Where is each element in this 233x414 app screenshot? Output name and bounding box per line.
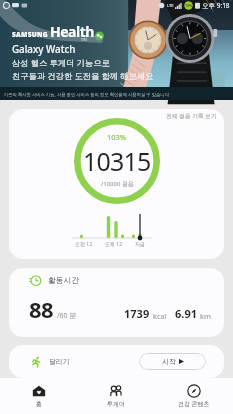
button[interactable]: 투게더: [77, 378, 155, 414]
staticText: 88: [29, 294, 54, 324]
staticText: kcal: [153, 311, 167, 321]
button[interactable]: 홈: [0, 378, 77, 414]
staticText: km: [200, 311, 212, 321]
staticText: LTE: [167, 3, 174, 8]
staticText: SAMSUNG: [12, 30, 48, 39]
staticText: 친구들과 건강한 도전을 함께 해보세요: [12, 70, 154, 81]
staticText: 전체 걸음 기록 보기: [166, 112, 217, 120]
staticText: 103%: [107, 132, 127, 142]
button[interactable]: 달리기: [9, 345, 224, 378]
button[interactable]: 활동시간: [9, 268, 224, 337]
button[interactable]: 건강 콘텐츠: [155, 378, 233, 414]
button[interactable]: 시작: [139, 353, 206, 370]
staticText: 오전 12: [75, 241, 93, 248]
staticText: 삼성 헬스 투게더 기능으로: [12, 57, 110, 68]
staticText: 오후 12: [105, 241, 123, 248]
staticText: 홈: [36, 400, 42, 408]
staticText: 지금: [135, 241, 145, 247]
button[interactable]: LTE: [0, 0, 233, 100]
staticText: 오후 9:18: [202, 1, 230, 10]
staticText: 1739: [124, 306, 150, 321]
button[interactable]: 전체 걸음 기록 보기: [9, 109, 224, 259]
staticText: 투게더: [107, 400, 125, 408]
staticText: 시작: [162, 357, 176, 366]
staticText: 19%: [185, 3, 193, 8]
staticText: 10315: [83, 144, 151, 178]
staticText: 기존의 확사한 서비스 기능, 사용 중인 서비스 등의 정보 확인을해 사용하…: [4, 91, 169, 97]
staticText: /10000 걸음: [101, 180, 134, 188]
staticText: Galaxy Watch: [12, 43, 76, 56]
staticText: TRX: [81, 37, 88, 42]
staticText: Health: [50, 22, 94, 41]
staticText: 6.91: [175, 306, 197, 321]
staticText: 활동시간: [48, 275, 80, 285]
staticText: /60 분: [57, 311, 77, 321]
staticText: 건강 콘텐츠: [178, 400, 210, 408]
staticText: 달리기: [49, 357, 70, 366]
